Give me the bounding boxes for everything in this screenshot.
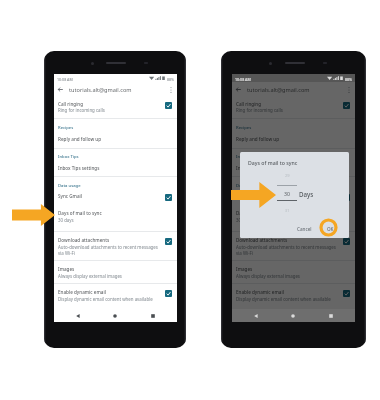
staticText: 88% — [167, 77, 175, 82]
button[interactable]: Download attachments — [232, 237, 355, 255]
staticText: 10:08 AM — [235, 77, 251, 82]
staticText: Days of mail to sync — [236, 210, 280, 216]
button[interactable]: Sync Gmail — [232, 193, 355, 201]
staticText: Days of mail to sync — [58, 210, 102, 216]
staticText: 10:08 AM — [235, 77, 251, 82]
button[interactable]: Back — [251, 311, 261, 321]
button[interactable]: Recents — [326, 311, 336, 321]
staticText: Auto-download attachments to recent mess… — [58, 244, 158, 250]
staticText: Download attachments — [58, 237, 110, 243]
staticText: Ring for incoming calls — [58, 107, 105, 113]
staticText: OK — [327, 226, 334, 232]
button[interactable]: Enable dynamic email — [232, 289, 355, 302]
button[interactable]: Home — [110, 311, 120, 321]
staticText: Download attachments — [236, 237, 288, 243]
staticText: Auto-download attachments to recent mess… — [236, 244, 336, 250]
button[interactable]: Toggle Enable dynamic email — [165, 290, 172, 297]
button[interactable]: OK — [325, 224, 336, 234]
staticText: Inbox Tips settings — [236, 165, 278, 171]
button[interactable]: Toggle Sync Gmail — [165, 194, 172, 201]
button[interactable]: Download attachments — [54, 237, 177, 255]
button[interactable]: Toggle Download attachments — [343, 238, 350, 245]
button[interactable]: More options — [166, 85, 176, 95]
staticText: tutorials.alt@gmail.com — [69, 86, 132, 94]
button[interactable]: Sync Gmail — [54, 193, 177, 201]
button[interactable]: Back — [73, 311, 83, 321]
button[interactable]: Toggle Sync Gmail — [343, 194, 350, 201]
staticText: via Wi-Fi — [236, 250, 254, 256]
staticText: Call ringing — [236, 101, 262, 107]
button[interactable]: Home — [288, 311, 298, 321]
button[interactable]: Reply and follow up — [232, 136, 355, 144]
staticText: Sync Gmail — [58, 193, 83, 199]
staticText: Always display external images — [236, 273, 300, 279]
staticText: tutorials.alt@gmail.com — [247, 86, 310, 94]
button[interactable]: Call ringing — [232, 101, 355, 114]
staticText: 10:08 AM — [57, 77, 73, 82]
staticText: Ring for incoming calls — [236, 107, 283, 113]
staticText: 88% — [345, 77, 353, 82]
button[interactable]: Images — [54, 266, 177, 279]
staticText: Images — [58, 266, 75, 272]
button[interactable]: Inbox Tips settings — [54, 165, 177, 173]
button[interactable]: Back — [55, 84, 66, 95]
button[interactable]: Toggle Download attachments — [165, 238, 172, 245]
staticText: Cancel — [297, 226, 312, 232]
staticText: Call ringing — [58, 101, 84, 107]
staticText: 30 days — [236, 217, 252, 223]
button[interactable]: Home — [288, 311, 298, 321]
staticText: Recipes — [58, 125, 74, 131]
staticText: Reply and follow up — [58, 136, 102, 142]
staticText: Data usage — [236, 183, 259, 189]
staticText: Images — [236, 266, 253, 272]
button[interactable]: Back — [251, 311, 261, 321]
button[interactable]: Back — [233, 84, 244, 95]
button[interactable]: Cancel — [295, 224, 314, 234]
button[interactable]: Inbox Tips settings — [232, 165, 355, 173]
button[interactable]: Toggle Call ringing — [165, 102, 172, 109]
button[interactable]: Days of mail to sync — [54, 210, 177, 223]
button[interactable]: Images — [232, 266, 355, 279]
button[interactable]: Recents — [326, 311, 336, 321]
staticText: Inbox Tips — [58, 154, 79, 160]
staticText: 30 days — [58, 217, 74, 223]
staticText: 30 — [284, 190, 290, 197]
button[interactable]: OK highlighted — [319, 218, 338, 237]
button[interactable]: Toggle Enable dynamic email — [343, 290, 350, 297]
staticText: Inbox Tips settings — [58, 165, 100, 171]
staticText: Data usage — [58, 183, 81, 189]
button[interactable]: Reply and follow up — [54, 136, 177, 144]
staticText: Days — [299, 190, 314, 198]
staticText: 88% — [345, 77, 353, 82]
button[interactable]: More options — [344, 85, 354, 95]
staticText: Enable dynamic email — [236, 289, 284, 295]
staticText: Recipes — [236, 125, 252, 131]
staticText: 31 — [285, 208, 290, 213]
staticText: Inbox Tips — [236, 154, 257, 160]
staticText: Display dynamic email content when avail… — [236, 296, 331, 302]
staticText: Display dynamic email content when avail… — [58, 296, 153, 302]
button[interactable]: Recents — [148, 311, 158, 321]
staticText: 29 — [285, 173, 290, 178]
staticText: Always display external images — [58, 273, 122, 279]
staticText: via Wi-Fi — [58, 250, 76, 256]
button[interactable]: Enable dynamic email — [54, 289, 177, 302]
staticText: Days of mail to sync — [248, 159, 298, 166]
button[interactable]: Toggle Call ringing — [343, 102, 350, 109]
staticText: Reply and follow up — [236, 136, 280, 142]
staticText: Enable dynamic email — [58, 289, 106, 295]
button[interactable]: Call ringing — [54, 101, 177, 114]
button[interactable]: Days of mail to sync — [232, 210, 355, 223]
